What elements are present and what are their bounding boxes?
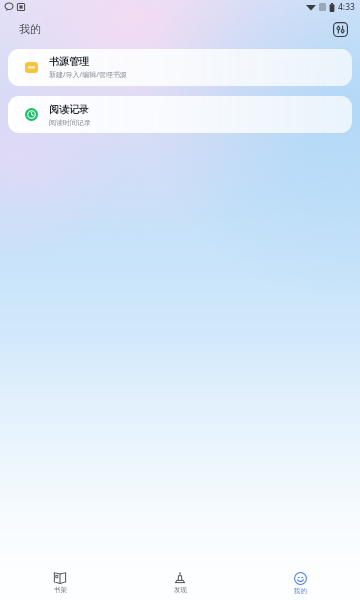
button[interactable]: 设置 <box>330 19 351 40</box>
button[interactable]: 书源管理 <box>8 49 352 86</box>
button[interactable]: 我的 <box>240 566 360 600</box>
staticText: 书源管理 <box>49 55 89 68</box>
staticText: 4:33 <box>338 1 355 13</box>
button[interactable]: 阅读记录 <box>8 96 352 133</box>
button[interactable]: 发现 <box>120 566 240 600</box>
staticText: 我的 <box>19 22 41 36</box>
staticText: 新建/导入/编辑/管理书源 <box>49 70 127 80</box>
staticText: 阅读记录 <box>49 103 89 116</box>
staticText: 发现 <box>174 586 187 594</box>
staticText: 我的 <box>294 587 307 595</box>
button[interactable]: 书架 <box>0 566 120 600</box>
staticText: 阅读时间记录 <box>49 118 91 127</box>
staticText: 书架 <box>54 586 67 594</box>
